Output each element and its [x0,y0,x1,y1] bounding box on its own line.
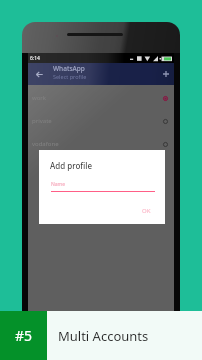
button[interactable]: OK [136,205,156,217]
staticText: WhatsApp [53,64,85,73]
staticText: OK [142,207,151,215]
staticText: #5 [15,326,33,345]
staticText: Name [51,181,66,188]
staticText: 6:14 [30,55,40,62]
button[interactable]: #5 [0,311,47,360]
button[interactable]: work [28,86,174,109]
staticText: private [32,117,161,125]
staticText: work [32,94,161,102]
button[interactable]: Back [33,68,45,80]
button[interactable]: private [28,109,174,132]
staticText: Add profile [50,160,93,171]
staticText: Multi Accounts [58,327,149,345]
button[interactable]: vodafone [28,132,174,155]
staticText: vodafone [32,140,161,148]
button[interactable]: Add profile [160,68,172,80]
staticText: Select profile [53,73,87,80]
